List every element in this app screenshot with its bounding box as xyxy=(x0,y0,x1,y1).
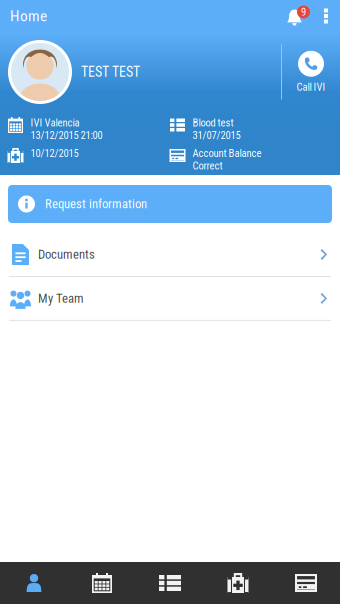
staticText: Correct xyxy=(192,159,222,172)
staticText: Blood test xyxy=(192,116,233,129)
button[interactable]: Documents xyxy=(0,233,340,277)
staticText: 9 xyxy=(301,6,306,18)
button[interactable]: Treatments xyxy=(136,562,204,604)
button[interactable]: Notifications xyxy=(282,0,315,32)
staticText: IVI Valencia xyxy=(30,116,79,129)
staticText: Documents xyxy=(38,247,95,262)
button[interactable]: My Team xyxy=(0,277,340,321)
staticText: 13/12/2015 21:00 xyxy=(30,129,102,141)
staticText: Account Balance xyxy=(192,147,261,159)
staticText: 31/07/2015 xyxy=(192,129,240,141)
button[interactable]: Billing xyxy=(272,562,340,604)
staticText: TEST TEST xyxy=(81,64,140,80)
button[interactable]: More options xyxy=(315,0,337,32)
button[interactable]: Calendar xyxy=(68,562,136,604)
staticText: 10/12/2015 xyxy=(30,147,78,159)
button[interactable]: Medication xyxy=(204,562,272,604)
staticText: My Team xyxy=(38,291,84,306)
staticText: Call IVI xyxy=(296,81,325,93)
button[interactable]: Call IVI xyxy=(282,44,340,99)
button[interactable]: Profile xyxy=(0,562,68,604)
button[interactable]: Request information xyxy=(8,185,332,223)
staticText: Request information xyxy=(45,197,147,211)
staticText: Home xyxy=(10,7,47,25)
